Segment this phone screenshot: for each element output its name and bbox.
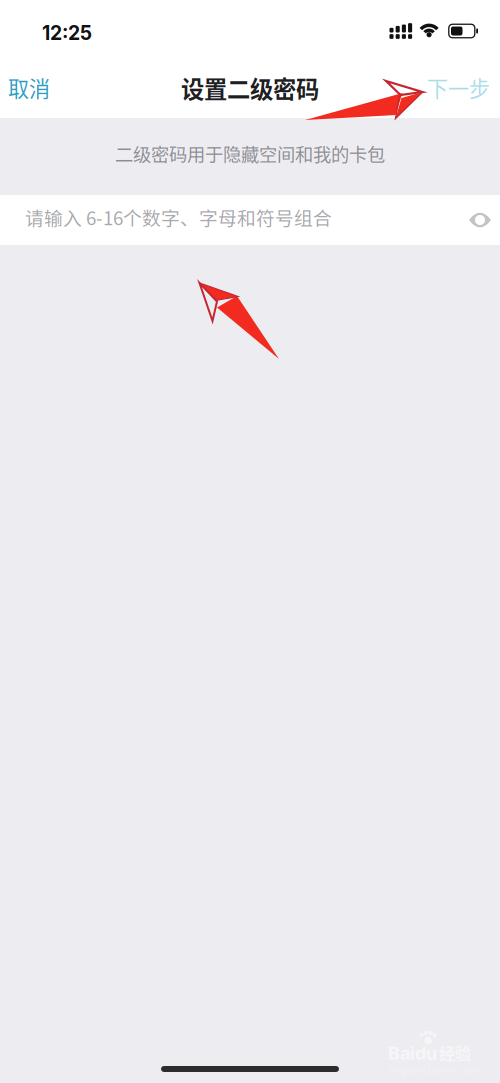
staticText: 取消 [8, 72, 50, 103]
staticText: 下一步 [427, 72, 490, 103]
staticText: 二级密码用于隐藏空间和我的卡包 [115, 140, 385, 167]
staticText: 请输入 6-16个数字、字母和符号组合 [25, 203, 332, 230]
staticText: 设置二级密码 [181, 71, 319, 105]
button[interactable]: 取消 [0, 67, 58, 113]
staticText: 12:25 [42, 21, 92, 45]
staticText: Baidu [388, 1042, 437, 1064]
button[interactable]: 下一步 [422, 67, 495, 113]
button[interactable]: Show password [462, 202, 498, 238]
staticText: 经验 [439, 1040, 471, 1064]
